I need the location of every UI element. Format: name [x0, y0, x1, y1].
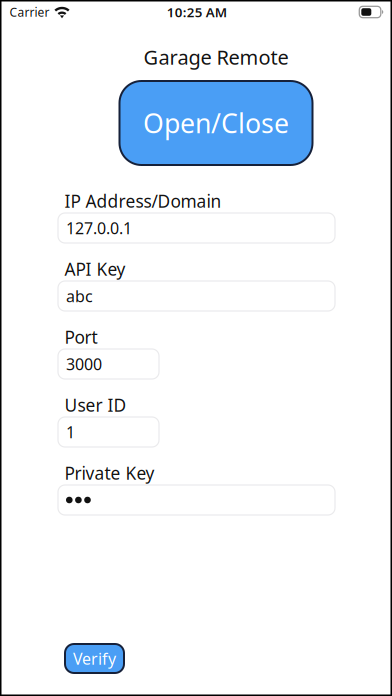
staticText: IP Address/Domain — [64, 189, 221, 212]
button[interactable]: abc — [58, 281, 335, 311]
staticText: User ID — [64, 393, 126, 416]
staticText: Verify — [73, 648, 116, 669]
button[interactable]: Verify — [65, 644, 124, 673]
staticText: Private Key — [64, 461, 154, 484]
staticText: 1 — [66, 421, 75, 443]
button[interactable]: 1 — [58, 417, 159, 447]
staticText: 10:25 AM — [167, 3, 227, 21]
button[interactable]: Open/Close — [119, 81, 312, 165]
staticText: Garage Remote — [143, 44, 288, 70]
button[interactable]: 3000 — [58, 349, 159, 379]
button[interactable] — [58, 485, 335, 515]
staticText: Port — [64, 325, 97, 348]
staticText: Carrier — [9, 4, 49, 20]
staticText: 3000 — [66, 353, 102, 375]
staticText: abc — [66, 285, 93, 307]
staticText: API Key — [64, 257, 125, 280]
staticText: Open/Close — [143, 105, 289, 141]
button[interactable]: 127.0.0.1 — [58, 213, 335, 243]
staticText: 127.0.0.1 — [66, 217, 132, 239]
